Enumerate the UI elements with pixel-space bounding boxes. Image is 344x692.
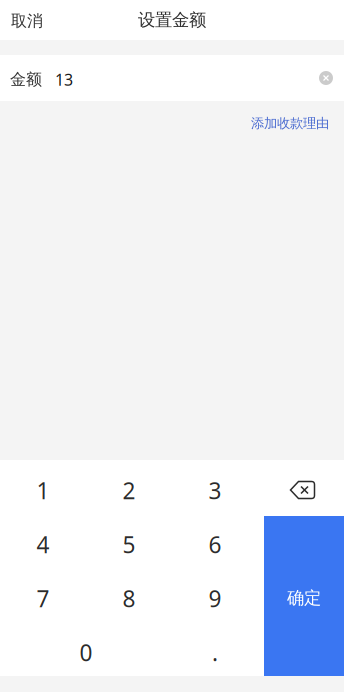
button[interactable]: 1	[0, 460, 86, 514]
button[interactable]: .	[172, 622, 258, 676]
staticText: 5	[122, 529, 135, 559]
button[interactable]: 7	[0, 568, 86, 622]
button[interactable]: 0	[0, 622, 172, 676]
staticText: 9	[208, 583, 221, 613]
button[interactable]: 2	[86, 460, 172, 514]
staticText: 添加收款理由	[251, 115, 329, 131]
button[interactable]: 6	[172, 514, 258, 568]
button[interactable]: 确定	[264, 516, 344, 676]
staticText: 取消	[11, 11, 43, 31]
staticText: 确定	[287, 587, 321, 609]
staticText: 1	[36, 475, 49, 505]
staticText: 6	[208, 529, 221, 559]
staticText: 0	[79, 637, 92, 667]
button[interactable]: 添加收款理由	[241, 101, 344, 137]
button[interactable]: 取消	[0, 0, 55, 40]
staticText: 8	[122, 583, 135, 613]
button[interactable]: 删除	[258, 460, 344, 516]
button[interactable]: 4	[0, 514, 86, 568]
button[interactable]: 清除	[310, 55, 342, 101]
staticText: 7	[36, 583, 49, 613]
button[interactable]: 3	[172, 460, 258, 514]
staticText: 金额	[10, 70, 42, 89]
staticText: 13	[55, 69, 73, 90]
staticText: 设置金额	[138, 9, 206, 31]
staticText: 4	[36, 529, 49, 559]
button[interactable]: 8	[86, 568, 172, 622]
button[interactable]: 5	[86, 514, 172, 568]
staticText: .	[212, 637, 218, 667]
staticText: 2	[122, 475, 135, 505]
button[interactable]: 9	[172, 568, 258, 622]
staticText: 3	[208, 475, 221, 505]
